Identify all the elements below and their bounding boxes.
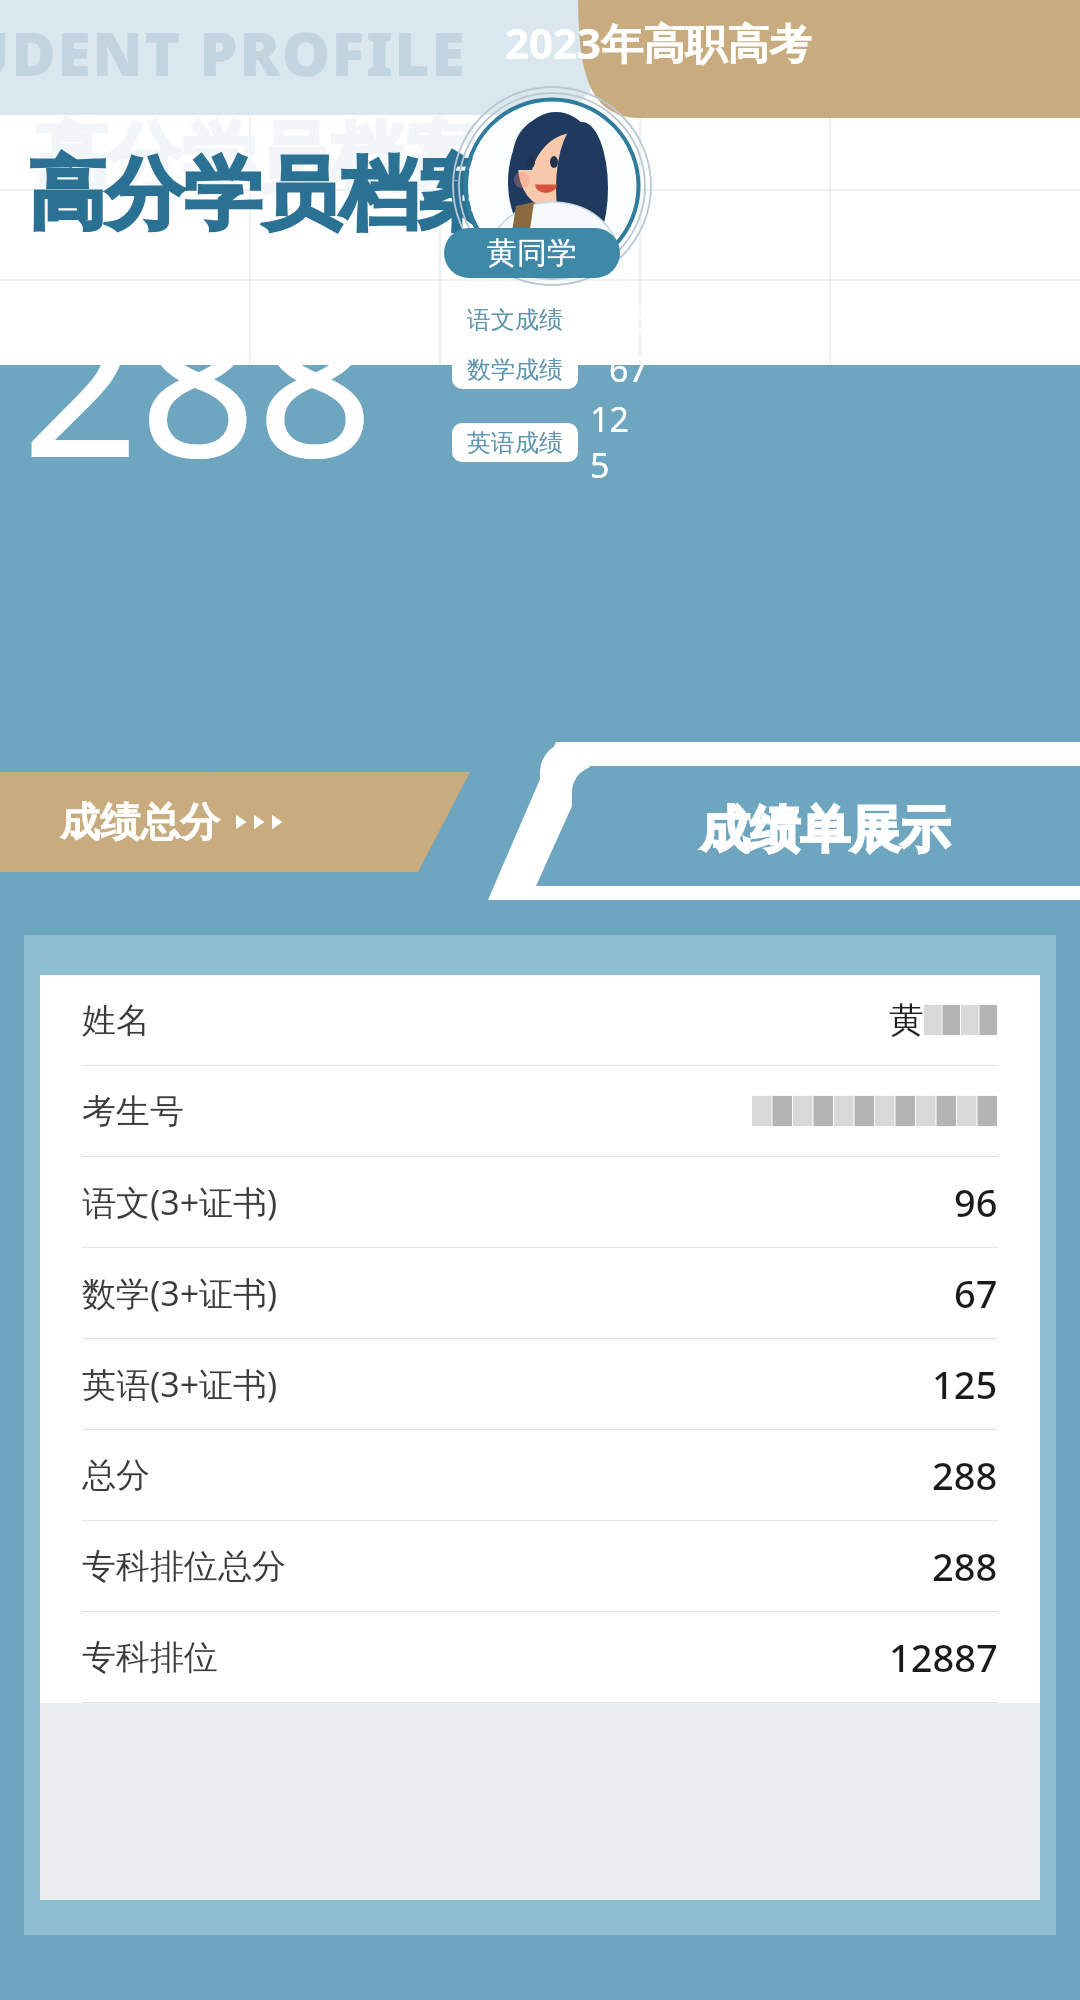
button[interactable]: 姓名 (82, 975, 998, 1066)
button[interactable]: 数学成绩 (452, 346, 648, 392)
staticText: 67 (609, 346, 648, 392)
staticText: 英语(3+证书) (82, 1361, 278, 1407)
staticText: 288 (932, 1449, 998, 1501)
staticText: 姓名 (82, 999, 150, 1042)
staticText: 12887 (889, 1631, 998, 1683)
staticText: 语文(3+证书) (82, 1179, 278, 1225)
button[interactable]: 专科排位 (82, 1612, 998, 1703)
button[interactable]: 语文(3+证书) (82, 1157, 998, 1248)
button[interactable]: 成绩总分 (60, 790, 360, 854)
staticText: 成绩总分 (60, 797, 220, 847)
button[interactable]: 英语(3+证书) (82, 1339, 998, 1430)
button[interactable]: 黄同学 (444, 228, 620, 278)
staticText: 288 (22, 238, 374, 517)
staticText: 2023年高职高考 (505, 14, 812, 71)
staticText: 96 (954, 1176, 998, 1228)
staticText: 高分学员档案 (28, 146, 496, 244)
button[interactable]: 语文成绩 (452, 296, 648, 342)
other: Student avatar (452, 86, 652, 286)
staticText: 专科排位总分 (82, 1545, 286, 1588)
staticText: 67 (954, 1267, 998, 1319)
staticText: 英语成绩 (467, 428, 563, 458)
staticText: 黄 (889, 998, 924, 1042)
button[interactable]: 专科排位总分 (82, 1521, 998, 1612)
staticText: 总分 (82, 1454, 150, 1497)
staticText: UDENT PROFILE (0, 12, 467, 94)
button[interactable]: 考生号 (82, 1066, 998, 1157)
staticText: 考生号 (82, 1090, 184, 1133)
staticText: 125 (590, 396, 648, 488)
button[interactable]: 成绩单展示 (600, 782, 1050, 878)
staticText: 数学成绩 (467, 355, 563, 385)
staticText: 数学(3+证书) (82, 1270, 278, 1316)
button[interactable]: 数学(3+证书) (82, 1248, 998, 1339)
staticText: 专科排位 (82, 1636, 218, 1679)
button[interactable]: 英语成绩 (452, 396, 648, 488)
button[interactable]: 总分 (82, 1430, 998, 1521)
staticText: 语文成绩 (467, 305, 563, 335)
staticText: 高分学员档案 (34, 112, 478, 205)
staticText: 成绩单展示 (700, 799, 950, 862)
staticText: 125 (932, 1358, 998, 1410)
staticText: 黄同学 (487, 234, 577, 272)
staticText: 288 (932, 1540, 998, 1592)
staticText: 96 (609, 296, 648, 342)
